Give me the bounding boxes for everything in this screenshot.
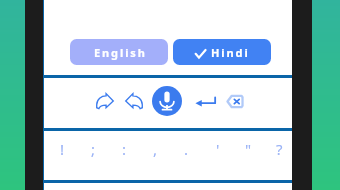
staticText: ,	[153, 139, 158, 159]
staticText: '	[216, 139, 220, 159]
button[interactable]: ;	[78, 131, 109, 180]
staticText: Hindi	[211, 45, 250, 60]
button[interactable]: Hindi	[173, 39, 271, 65]
staticText: ?	[276, 139, 283, 159]
staticText: !	[60, 139, 65, 159]
button[interactable]: .	[171, 131, 202, 180]
button[interactable]: ?	[264, 131, 295, 180]
button[interactable]: Undo	[119, 86, 149, 116]
staticText: "	[245, 139, 252, 159]
button[interactable]: :	[109, 131, 140, 180]
button[interactable]: "	[233, 131, 264, 180]
staticText: English	[94, 45, 147, 60]
staticText: .	[184, 139, 189, 159]
button[interactable]: Enter	[190, 87, 220, 117]
button[interactable]: ,	[140, 131, 171, 180]
staticText: :	[122, 139, 127, 159]
button[interactable]: English	[70, 39, 168, 65]
staticText: ;	[91, 139, 96, 159]
button[interactable]: !	[46, 131, 78, 180]
button[interactable]: Redo	[90, 86, 120, 116]
button[interactable]: Backspace	[220, 86, 250, 116]
button[interactable]: Voice input	[152, 86, 182, 116]
button[interactable]: '	[202, 131, 233, 180]
